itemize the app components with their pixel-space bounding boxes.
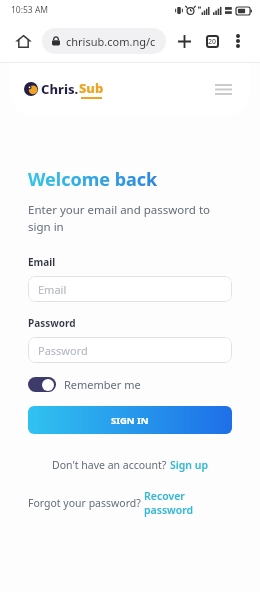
button[interactable]: Menu [210, 76, 236, 102]
button[interactable]: SIGN IN [28, 406, 232, 434]
staticText: Forgot your password? [28, 496, 144, 510]
button[interactable]: Email [28, 276, 232, 302]
staticText: Password [28, 316, 76, 330]
button[interactable]: Recover password [144, 489, 232, 517]
staticText: Sign up [170, 458, 209, 472]
button[interactable]: More options [226, 29, 250, 53]
staticText: Email [28, 255, 56, 269]
staticText: chrisub.com.ng/c [66, 34, 156, 49]
button[interactable]: Password [28, 337, 232, 363]
staticText: SIGN IN [111, 414, 149, 427]
staticText: Recover password [144, 489, 232, 517]
button[interactable]: Tabs: 20 open [198, 27, 226, 55]
staticText: 20 [208, 37, 217, 47]
button[interactable]: Sign up [170, 458, 209, 472]
staticText: Don't have an account? [52, 458, 170, 472]
staticText: Chris. [41, 80, 79, 98]
button[interactable]: Home [10, 28, 36, 54]
staticText: 10:53 AM [11, 4, 49, 16]
staticText: Enter your email and password to sign in [28, 202, 232, 235]
button[interactable]: Chris. [24, 79, 104, 99]
staticText: Email [38, 282, 67, 297]
button[interactable]: New tab [170, 27, 198, 55]
staticText: Sub [79, 79, 104, 97]
staticText: Welcome back [28, 167, 158, 192]
button[interactable]: chrisub.com.ng/c [42, 28, 166, 54]
button[interactable]: Remember me [28, 377, 141, 392]
staticText: Remember me [64, 377, 141, 392]
staticText: Password [38, 343, 88, 358]
